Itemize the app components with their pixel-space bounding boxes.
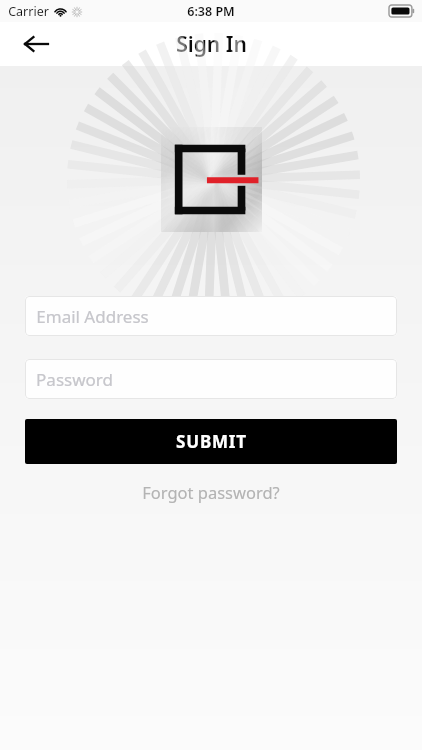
staticText: Password [36, 368, 113, 391]
button[interactable]: Email Address [25, 296, 397, 336]
staticText: SUBMIT [176, 430, 247, 453]
button[interactable]: Back [14, 22, 58, 66]
staticText: Forgot password? [142, 481, 280, 503]
button[interactable]: Forgot password? [0, 477, 422, 507]
staticText: Carrier [8, 3, 49, 20]
button[interactable]: Password [25, 359, 397, 399]
staticText: 6:38 PM [187, 3, 235, 20]
staticText: Email Address [36, 305, 149, 328]
staticText: Sign In [176, 30, 247, 59]
button[interactable]: SUBMIT [25, 419, 397, 464]
